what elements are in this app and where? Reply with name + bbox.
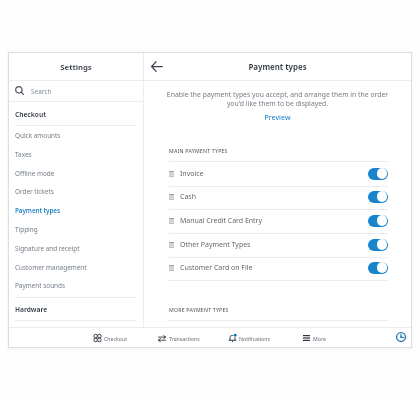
button[interactable]: Customer Card on File xyxy=(169,256,388,280)
staticText: Signature and receipt xyxy=(15,244,80,253)
staticText: Manual Credit Card Entry xyxy=(180,216,263,226)
button[interactable]: Toggle Manual Credit Card Entry xyxy=(368,215,388,227)
button[interactable]: Cash xyxy=(169,185,388,209)
button[interactable]: Notifications xyxy=(229,331,277,345)
button[interactable]: Toggle Cash xyxy=(368,191,388,203)
staticText: Invoice xyxy=(180,169,204,179)
button[interactable]: Customer management xyxy=(9,258,143,277)
staticText: Order tickets xyxy=(15,187,54,196)
button[interactable]: Back xyxy=(148,57,166,76)
button[interactable]: Recent activity xyxy=(393,328,408,346)
staticText: MAIN PAYMENT TYPES xyxy=(169,147,228,154)
button[interactable]: Toggle Invoice xyxy=(368,168,388,180)
button[interactable]: Checkout xyxy=(94,331,135,345)
staticText: Settings xyxy=(9,62,143,73)
button[interactable]: Invoice xyxy=(169,162,388,186)
staticText: More xyxy=(313,335,326,342)
button[interactable]: Transactions xyxy=(158,331,208,345)
button[interactable]: Settings xyxy=(9,61,143,73)
staticText: Notifications xyxy=(239,335,270,342)
staticText: Transactions xyxy=(169,335,200,342)
staticText: Payment types xyxy=(144,62,411,73)
staticText: Customer management xyxy=(15,263,87,272)
staticText: Cash xyxy=(180,192,196,202)
staticText: Hardware xyxy=(15,305,48,314)
button[interactable]: Search xyxy=(9,81,143,101)
button[interactable]: Order tickets xyxy=(9,182,143,201)
button[interactable]: Toggle Customer Card on File xyxy=(368,262,388,274)
button[interactable]: Quick amounts xyxy=(9,126,143,145)
button[interactable]: Tipping xyxy=(9,220,143,239)
staticText: Search xyxy=(31,87,52,96)
staticText: Checkout xyxy=(15,110,46,119)
button[interactable]: Manual Credit Card Entry xyxy=(169,209,388,233)
staticText: Tipping xyxy=(15,225,38,234)
staticText: Taxes xyxy=(15,150,32,159)
button[interactable]: Payment types xyxy=(9,201,143,220)
button[interactable]: Signature and receipt xyxy=(9,239,143,258)
button[interactable]: Checkout xyxy=(15,109,46,120)
button[interactable]: Toggle Other Payment Types xyxy=(368,239,388,251)
button[interactable]: More xyxy=(303,331,335,345)
staticText: Preview xyxy=(144,113,411,123)
button[interactable]: Payment sounds xyxy=(9,276,143,295)
button[interactable]: Other Payment Types xyxy=(169,233,388,257)
button[interactable]: Taxes xyxy=(9,145,143,164)
staticText: Payment sounds xyxy=(15,281,66,290)
staticText: MORE PAYMENT TYPES xyxy=(169,306,229,313)
button[interactable]: Payment types xyxy=(144,61,411,74)
staticText: Checkout xyxy=(104,335,128,342)
button[interactable]: Preview xyxy=(144,112,411,123)
button[interactable]: Hardware xyxy=(15,304,48,315)
staticText: Enable the payment types you accept, and… xyxy=(144,90,411,108)
staticText: Customer Card on File xyxy=(180,263,253,273)
staticText: Other Payment Types xyxy=(180,240,251,250)
staticText: Payment types xyxy=(15,206,61,215)
staticText: Quick amounts xyxy=(15,131,61,140)
button[interactable]: Offline mode xyxy=(9,164,143,183)
staticText: Offline mode xyxy=(15,169,55,178)
